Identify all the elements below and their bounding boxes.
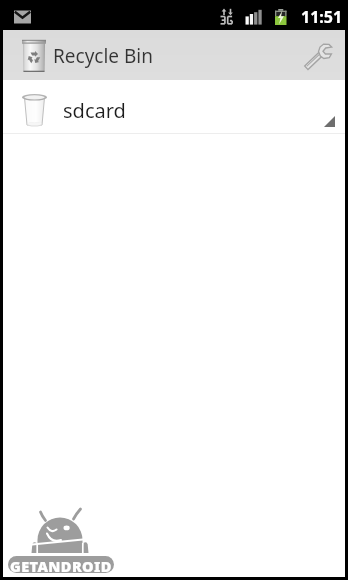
staticText: GETANDROID xyxy=(10,556,112,573)
staticText: Recycle Bin xyxy=(53,43,154,69)
staticText: 11:51 xyxy=(301,6,343,28)
button[interactable]: Settings xyxy=(295,35,339,79)
button[interactable]: sdcard xyxy=(3,80,345,134)
staticText: sdcard xyxy=(63,97,126,124)
